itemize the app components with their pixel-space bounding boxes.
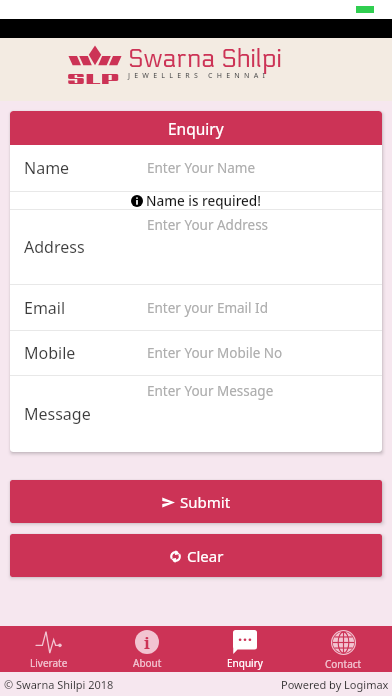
button[interactable]: Message (10, 376, 382, 452)
staticText: Name (24, 157, 70, 179)
staticText: About (133, 656, 162, 670)
staticText: Submit (180, 492, 231, 512)
staticText: i (144, 631, 150, 654)
staticText: Enter Your Address (147, 216, 269, 234)
staticText: Email (24, 297, 66, 319)
button[interactable]: Email (10, 285, 382, 330)
button[interactable]: Address (10, 210, 382, 284)
staticText: Address (24, 236, 85, 258)
staticText: J E W E L L E R S C H E N N A I (128, 71, 267, 81)
staticText: Message (24, 403, 91, 425)
staticText: Enter Your Message (147, 382, 274, 400)
other: Contact (331, 630, 356, 655)
button[interactable]: Submit (10, 480, 382, 523)
other: About (135, 630, 159, 654)
staticText: Contact (325, 657, 362, 671)
button[interactable]: Name (10, 145, 382, 191)
staticText: Name is required! (146, 192, 261, 209)
staticText: Powered by Logimax (281, 677, 389, 692)
staticText: Enquiry (227, 656, 263, 670)
staticText: Enter Your Name (147, 159, 256, 177)
button[interactable]: Contact (294, 626, 392, 672)
button[interactable]: Enquiry (196, 626, 294, 672)
staticText: Enter Your Mobile No (147, 344, 283, 362)
staticText: Mobile (24, 342, 76, 364)
staticText: SLP (67, 67, 120, 89)
staticText: Clear (187, 546, 224, 566)
staticText: Liverate (30, 656, 68, 670)
staticText: © Swarna Shilpi 2018 (4, 677, 114, 692)
staticText: Enquiry (168, 118, 224, 139)
staticText: Swarna Shilpi (128, 44, 282, 74)
staticText: Enter your Email Id (147, 299, 268, 317)
button[interactable]: Mobile (10, 331, 382, 375)
button[interactable]: Liverate (0, 626, 98, 672)
button[interactable]: About (98, 626, 196, 672)
button[interactable]: Clear (10, 534, 382, 577)
